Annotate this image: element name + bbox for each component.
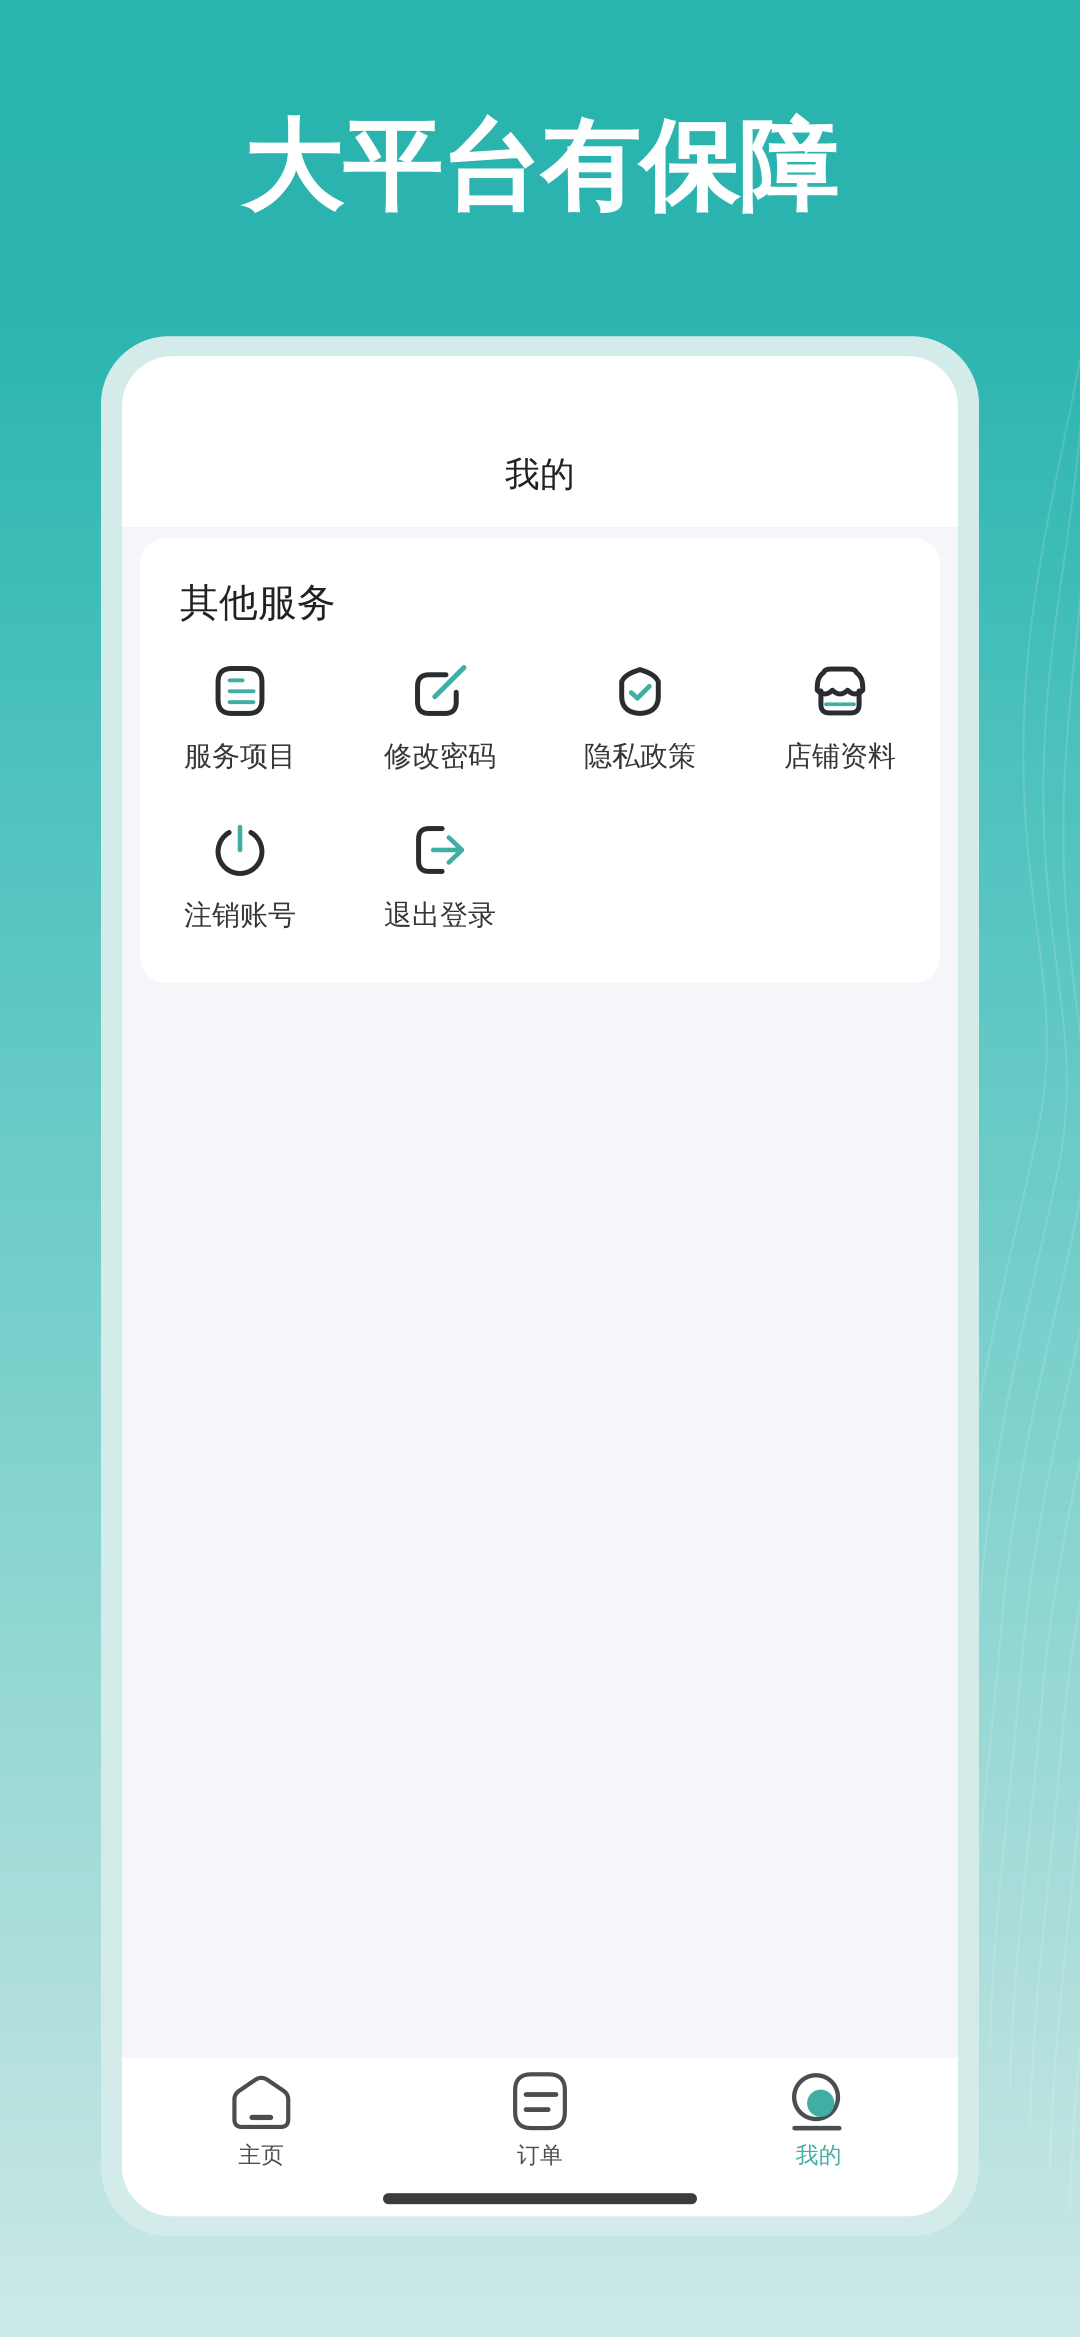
button[interactable]: 我的 bbox=[679, 2072, 958, 2169]
staticText: 订单 bbox=[517, 2141, 563, 2169]
button[interactable]: 主页 bbox=[122, 2072, 401, 2169]
button[interactable]: 店铺资料 bbox=[740, 666, 940, 773]
staticText: 大平台有保障 bbox=[243, 107, 837, 228]
button[interactable]: 修改密码 bbox=[340, 666, 540, 773]
staticText: 注销账号 bbox=[184, 898, 296, 932]
staticText: 店铺资料 bbox=[784, 739, 896, 773]
staticText: 服务项目 bbox=[184, 739, 296, 773]
staticText: 我的 bbox=[505, 453, 575, 496]
button[interactable]: 退出登录 bbox=[340, 825, 540, 932]
staticText: 主页 bbox=[238, 2141, 284, 2169]
button[interactable]: 服务项目 bbox=[140, 666, 340, 773]
staticText: 其他服务 bbox=[180, 579, 336, 627]
button[interactable]: 订单 bbox=[401, 2072, 679, 2169]
staticText: 我的 bbox=[796, 2141, 842, 2169]
staticText: 修改密码 bbox=[384, 739, 496, 773]
button[interactable]: 注销账号 bbox=[140, 825, 340, 932]
staticText: 隐私政策 bbox=[584, 739, 696, 773]
button[interactable]: 隐私政策 bbox=[540, 666, 740, 773]
staticText: 退出登录 bbox=[384, 898, 496, 932]
